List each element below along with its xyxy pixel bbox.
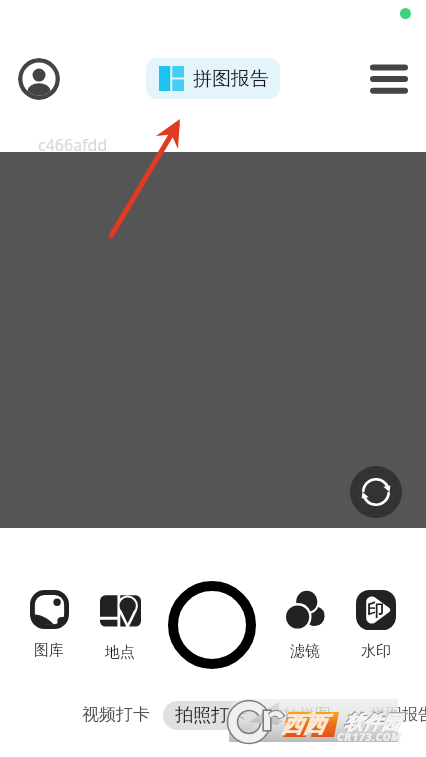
staticText: 地点 bbox=[105, 643, 135, 662]
button[interactable]: 滤镜 bbox=[275, 590, 335, 661]
staticText: CR173.COM bbox=[337, 729, 402, 744]
staticText: 软件园 bbox=[343, 710, 400, 734]
button[interactable]: 视频打卡 bbox=[82, 704, 150, 725]
button[interactable]: 拍照打卡 bbox=[163, 701, 259, 730]
staticText: c466afdd bbox=[38, 134, 108, 156]
staticText: 拼图报告 bbox=[193, 67, 269, 91]
button[interactable]: 地点 bbox=[90, 590, 150, 662]
staticText: 滤镜 bbox=[290, 642, 320, 661]
staticText: 图库 bbox=[34, 641, 64, 660]
button[interactable]: 拼图报告 bbox=[146, 58, 280, 99]
button[interactable]: 拼图报告 bbox=[370, 705, 426, 725]
staticText: 软件园 bbox=[344, 711, 400, 734]
button[interactable]: 连拍拼图 bbox=[267, 705, 331, 725]
staticText: 印 bbox=[367, 600, 384, 621]
staticText: 水印 bbox=[361, 642, 391, 661]
button[interactable]: 图库 bbox=[19, 590, 79, 660]
button[interactable]: Menu bbox=[366, 56, 412, 102]
button[interactable]: 印 bbox=[346, 590, 406, 661]
button[interactable]: Switch camera bbox=[350, 466, 402, 518]
button[interactable]: Account bbox=[18, 58, 60, 100]
button[interactable]: Shutter bbox=[165, 578, 259, 672]
staticText: 拍照打卡 bbox=[175, 704, 247, 727]
staticText: 西西 bbox=[281, 711, 325, 739]
